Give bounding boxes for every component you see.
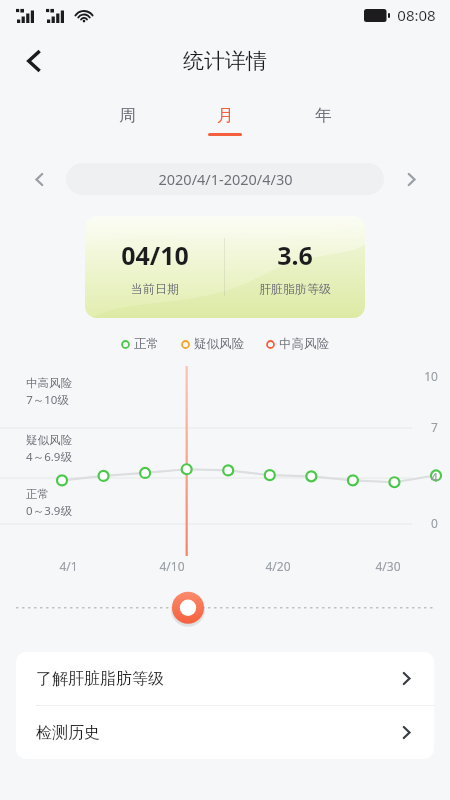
staticText: 08:08 [397, 5, 436, 25]
button[interactable]: 周 [101, 101, 153, 140]
staticText: 疑似风险 [194, 336, 244, 352]
button[interactable]: 了解肝脏脂肪等级 [16, 652, 434, 705]
staticText: 中高风险 [26, 376, 72, 390]
staticText: 0～3.9级 [26, 503, 72, 519]
staticText: 7～10级 [26, 392, 69, 408]
staticText: 疑似风险 [26, 433, 72, 447]
staticText: 检测历史 [36, 723, 100, 743]
button[interactable]: Back [10, 37, 58, 85]
button[interactable]: 年 [297, 101, 349, 140]
staticText: 4/1 [59, 558, 78, 574]
staticText: 4/30 [375, 558, 401, 574]
staticText: 统计详情 [183, 48, 267, 74]
button[interactable]: 04/10 [85, 216, 365, 318]
staticText: 0 [431, 515, 438, 531]
staticText: 3.6 [277, 238, 313, 272]
staticText: 2020/4/1-2020/4/30 [158, 169, 293, 189]
staticText: 4～6.9级 [26, 449, 72, 465]
staticText: 正常 [26, 487, 49, 501]
button[interactable]: 检测历史 [16, 706, 434, 759]
staticText: 周 [119, 105, 136, 126]
staticText: 中高风险 [279, 336, 329, 352]
button[interactable]: Next period [394, 162, 428, 196]
staticText: 月 [217, 105, 234, 126]
staticText: 04/10 [121, 238, 189, 272]
staticText: 4 [431, 469, 438, 485]
staticText: 当前日期 [131, 281, 179, 296]
staticText: 7 [431, 419, 438, 435]
button[interactable]: 月 [199, 101, 251, 140]
staticText: 了解肝脏脂肪等级 [36, 669, 164, 689]
button[interactable]: 2020/4/1-2020/4/30 [66, 163, 384, 195]
staticText: 10 [424, 368, 438, 384]
button[interactable]: Previous period [22, 162, 56, 196]
staticText: 正常 [134, 336, 159, 352]
staticText: 肝脏脂肪等级 [259, 281, 331, 296]
staticText: 4/10 [159, 558, 185, 574]
staticText: 4/20 [265, 558, 291, 574]
staticText: 年 [315, 105, 332, 126]
